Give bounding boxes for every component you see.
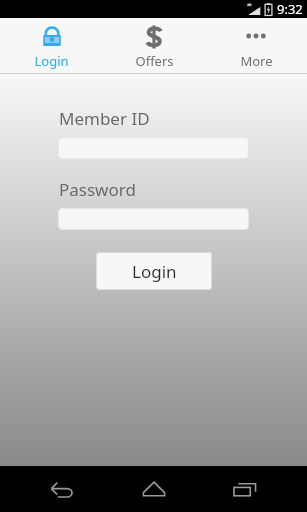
button[interactable]: Recents <box>215 466 275 512</box>
button[interactable]: Back <box>32 466 92 512</box>
button[interactable]: Login <box>0 18 103 73</box>
button[interactable]: More <box>205 18 307 73</box>
staticText: Login <box>132 260 177 283</box>
button[interactable]: Login <box>96 252 212 290</box>
staticText: Offers <box>135 52 174 70</box>
staticText: Member ID <box>59 107 150 130</box>
button[interactable] <box>58 137 249 159</box>
staticText: More <box>240 52 273 70</box>
staticText: Login <box>34 52 69 70</box>
button[interactable]: Home <box>124 466 184 512</box>
button[interactable]: Offers <box>103 18 205 73</box>
button[interactable] <box>58 208 249 230</box>
staticText: Password <box>59 178 136 201</box>
staticText: 9:32 <box>277 0 303 18</box>
